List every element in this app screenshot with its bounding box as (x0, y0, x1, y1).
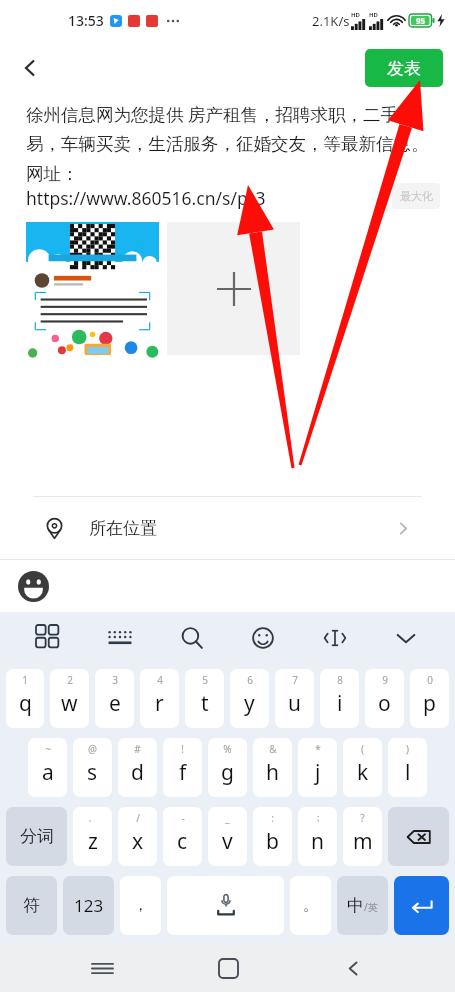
button[interactable]: Back (329, 945, 377, 992)
staticText: r (155, 689, 164, 718)
staticText: l (405, 758, 411, 787)
staticText: m (353, 827, 373, 856)
staticText: 8 (337, 673, 343, 687)
button[interactable]: 123 (63, 876, 114, 935)
button[interactable]: Enter (394, 876, 449, 935)
staticText: ， (133, 896, 148, 915)
button[interactable]: Apps (26, 615, 72, 661)
staticText: o (378, 689, 391, 718)
staticText: a (42, 758, 54, 787)
button[interactable]: # (118, 738, 157, 797)
button[interactable]: ~ (28, 738, 67, 797)
button[interactable]: Emoji (240, 615, 286, 661)
staticText: 分词 (20, 826, 54, 847)
button[interactable]: ， (120, 876, 161, 935)
button[interactable]: % (208, 738, 247, 797)
staticText: # (134, 742, 141, 756)
button[interactable]: Search (169, 615, 215, 661)
button[interactable]: * (298, 738, 337, 797)
staticText: 5 (202, 673, 208, 687)
staticText: ) (406, 742, 409, 756)
button[interactable]: 符 (6, 876, 57, 935)
button[interactable]: / (118, 807, 157, 866)
staticText: HD (351, 11, 360, 19)
button[interactable]: 3 (95, 669, 134, 728)
button[interactable]: Keyboard (97, 615, 143, 661)
button[interactable]: Add image (167, 222, 300, 355)
staticText: 9 (382, 673, 388, 687)
button[interactable]: : (253, 807, 292, 866)
staticText: i (337, 689, 343, 718)
staticText: 最大化 (400, 189, 433, 203)
staticText: % (223, 742, 232, 756)
button[interactable]: ? (343, 807, 382, 866)
button[interactable]: - (163, 807, 202, 866)
staticText: 7 (292, 673, 298, 687)
staticText: 、 (88, 811, 98, 824)
button[interactable]: 6 (230, 669, 269, 728)
staticText: 2.1K/s (312, 12, 350, 30)
staticText: z (88, 827, 98, 856)
button[interactable]: 8 (320, 669, 359, 728)
button[interactable]: Space (167, 876, 284, 935)
staticText: s (87, 758, 98, 787)
staticText: b (266, 827, 279, 856)
staticText: & (269, 742, 277, 756)
button[interactable]: Emoji (13, 566, 53, 606)
staticText: 发表 (387, 58, 421, 79)
button[interactable]: 、 (73, 807, 112, 866)
button[interactable]: 。 (290, 876, 331, 935)
staticText: n (311, 827, 324, 856)
button[interactable]: Backspace (388, 807, 449, 866)
staticText: 。 (303, 896, 318, 915)
staticText: 所在位置 (89, 518, 157, 539)
button[interactable]: ) (388, 738, 427, 797)
button[interactable]: 0 (410, 669, 449, 728)
staticText: 13:53 (68, 11, 104, 30)
staticText: 符 (23, 895, 40, 916)
button[interactable]: 4 (140, 669, 179, 728)
button[interactable]: & (253, 738, 292, 797)
button[interactable]: Back (8, 46, 52, 90)
staticText: k (357, 758, 369, 787)
staticText: 95 (416, 15, 426, 26)
staticText: @ (88, 742, 97, 756)
staticText: https://www.860516.cn/s/p_3 (26, 186, 266, 210)
staticText: 3 (112, 673, 118, 687)
staticText: * (315, 742, 321, 756)
button[interactable]: Hide keyboard (383, 615, 429, 661)
staticText: v (222, 827, 233, 856)
staticText: ( (361, 742, 364, 756)
button[interactable]: Home (204, 945, 252, 992)
button[interactable]: 所在位置 (0, 497, 455, 559)
staticText: ~ (45, 742, 51, 756)
button[interactable]: 2 (50, 669, 89, 728)
staticText: 中 (347, 895, 364, 916)
staticText: u (288, 689, 301, 718)
button[interactable]: ! (163, 738, 202, 797)
button[interactable]: ( (343, 738, 382, 797)
staticText: x (132, 827, 144, 856)
button[interactable]: @ (73, 738, 112, 797)
staticText: 2 (67, 673, 73, 687)
button[interactable]: 5 (185, 669, 224, 728)
staticText: /英 (364, 900, 378, 914)
staticText: / (136, 811, 140, 825)
button[interactable]: _ (208, 807, 247, 866)
staticText: ? (360, 811, 365, 825)
button[interactable]: Recent apps (78, 945, 126, 992)
button[interactable]: Edit cursor (312, 615, 358, 661)
staticText: g (221, 758, 234, 787)
staticText: 徐州信息网为您提供 房产租售，招聘求职，二手交易，车辆买卖，生活服务，征婚交友，… (26, 102, 429, 186)
button[interactable]: 7 (275, 669, 314, 728)
staticText: f (179, 758, 187, 787)
button[interactable]: ； (298, 807, 337, 866)
staticText: _ (225, 811, 230, 825)
staticText: j (315, 758, 321, 787)
staticText: 123 (74, 894, 104, 917)
button[interactable]: 9 (365, 669, 404, 728)
button[interactable]: 分词 (6, 807, 67, 866)
button[interactable]: 中 (337, 876, 388, 935)
button[interactable]: 1 (6, 669, 44, 728)
button[interactable]: 发表 (365, 49, 443, 87)
